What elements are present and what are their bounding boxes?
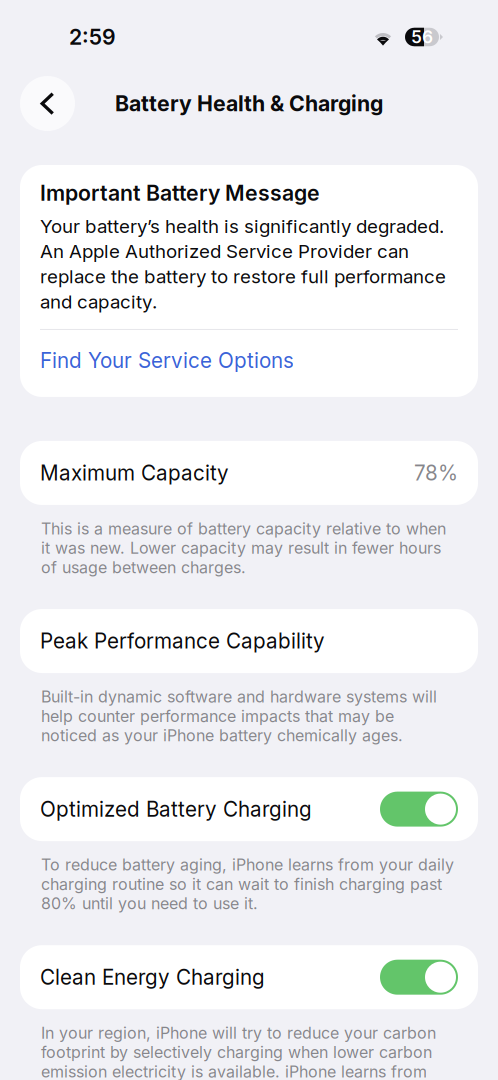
- button[interactable]: Find Your Service Options: [40, 330, 458, 391]
- button[interactable]: Clean Energy Charging: [20, 945, 478, 1009]
- button[interactable]: Back: [20, 76, 75, 131]
- staticText: Peak Performance Capability: [40, 628, 325, 653]
- staticText: Battery Health & Charging: [115, 91, 383, 116]
- staticText: 56: [411, 26, 433, 47]
- staticText: Built-in dynamic software and hardware s…: [41, 687, 437, 745]
- staticText: In your region, iPhone will try to reduc…: [41, 1023, 436, 1080]
- button[interactable]: Maximum Capacity: [20, 441, 478, 505]
- staticText: Your battery’s health is significantly d…: [40, 215, 446, 313]
- staticText: Optimized Battery Charging: [40, 797, 312, 822]
- button[interactable]: Optimized Battery Charging: [20, 777, 478, 841]
- button[interactable]: Peak Performance Capability: [20, 609, 478, 673]
- staticText: 78%: [414, 460, 458, 485]
- staticText: Find Your Service Options: [40, 348, 294, 373]
- staticText: 2:59: [69, 24, 116, 50]
- staticText: This is a measure of battery capacity re…: [41, 519, 446, 577]
- staticText: To reduce battery aging, iPhone learns f…: [41, 855, 454, 913]
- staticText: Clean Energy Charging: [40, 965, 265, 990]
- staticText: Maximum Capacity: [40, 460, 229, 485]
- staticText: Important Battery Message: [40, 180, 320, 206]
